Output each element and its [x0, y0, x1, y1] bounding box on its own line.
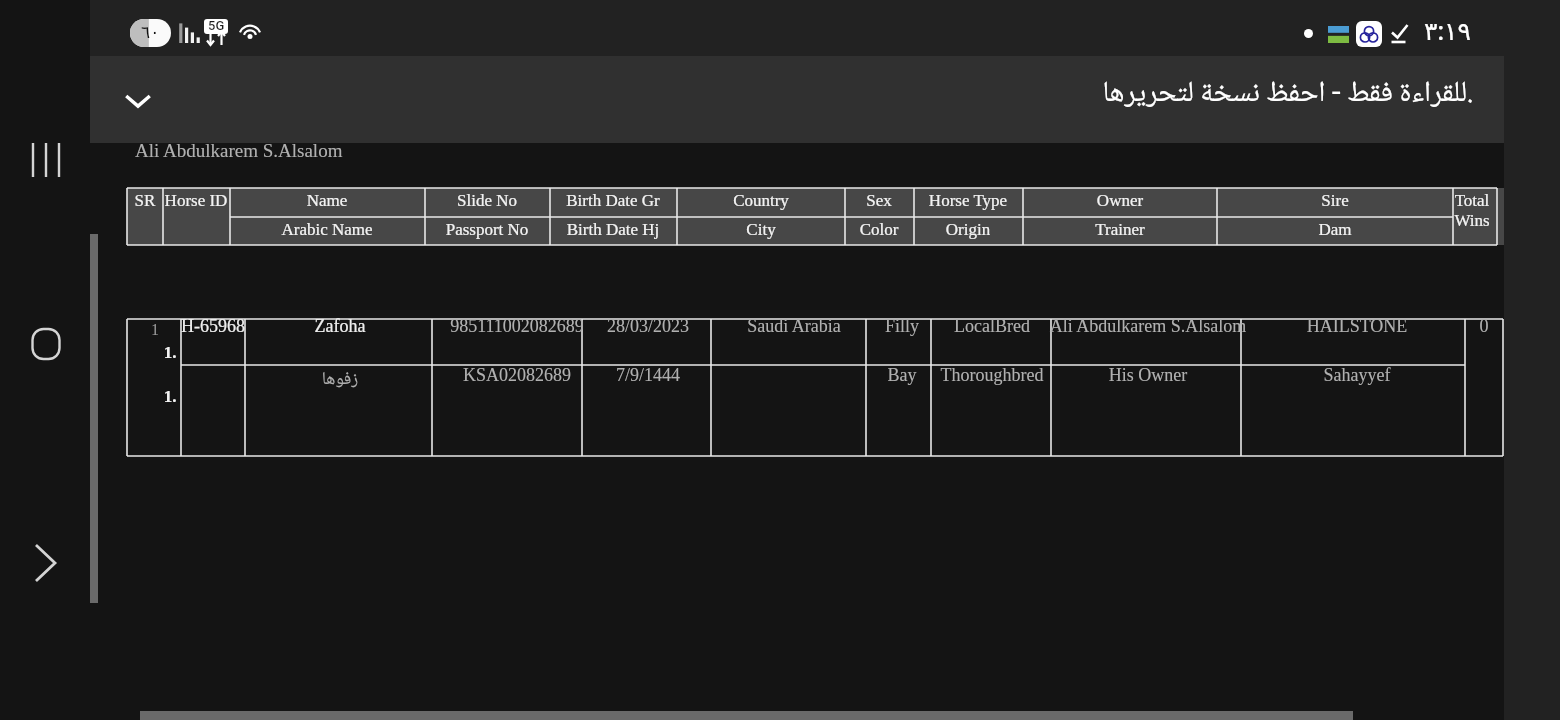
staticText: Country [461, 191, 1061, 210]
staticText: Owner [820, 191, 1420, 210]
staticText: KSA02082689 [217, 365, 817, 385]
staticText: ٦٠ [141, 22, 160, 42]
button[interactable]: Recents [18, 132, 74, 188]
staticText: Ali Abdulkarem S.Alsalom [135, 140, 343, 161]
staticText: 985111002082689 [217, 316, 817, 336]
staticText: Bay [602, 365, 1202, 385]
staticText: Arabic Name [27, 220, 627, 239]
staticText: His Owner [848, 365, 1448, 385]
staticText: 1 [0, 321, 455, 339]
staticText: Zafoha [40, 316, 640, 336]
button[interactable]: Collapse banner [116, 78, 160, 122]
staticText: 1. [0, 387, 470, 406]
staticText: Name [27, 191, 627, 210]
staticText: Horse ID [0, 191, 496, 210]
staticText: زفوها [40, 365, 640, 396]
staticText: Origin [668, 220, 1268, 239]
staticText: Sex [579, 191, 1179, 210]
staticText: Wins [1172, 211, 1560, 230]
staticText: City [461, 220, 1061, 239]
button[interactable]: Home [18, 316, 74, 372]
button[interactable]: Collapse banner [90, 56, 1504, 143]
staticText: Birth Date Hj [313, 220, 913, 239]
staticText: HAILSTONE [1057, 316, 1560, 336]
staticText: Saudi Arabia [494, 316, 1094, 336]
staticText: 5G [208, 19, 225, 33]
staticText: Trainer [820, 220, 1420, 239]
staticText: H-65968 [0, 316, 513, 336]
staticText: Birth Date Gr [313, 191, 913, 210]
staticText: Dam [1035, 220, 1560, 239]
staticText: Filly [602, 316, 1202, 336]
staticText: ٣:١٩ [1424, 17, 1471, 46]
staticText: Color [579, 220, 1179, 239]
staticText: SR [0, 191, 445, 210]
button[interactable]: Back [18, 535, 74, 591]
staticText: LocalBred [692, 316, 1292, 336]
staticText: Horse Type [668, 191, 1268, 210]
staticText: Total [1172, 191, 1560, 210]
staticText: 1. [0, 343, 470, 362]
staticText: Thoroughbred [692, 365, 1292, 385]
staticText: Ali Abdulkarem S.Alsalom [848, 316, 1448, 336]
staticText: للقراءة فقط - احفظ نسخة لتحريرها. [1043, 70, 1473, 119]
staticText: 28/03/2023 [348, 316, 948, 336]
staticText: Sahayyef [1057, 365, 1560, 385]
staticText: Passport No [187, 220, 787, 239]
staticText: Sire [1035, 191, 1560, 210]
staticText: 7/9/1444 [348, 365, 948, 385]
staticText: Slide No [187, 191, 787, 210]
staticText: 0 [1184, 316, 1560, 336]
